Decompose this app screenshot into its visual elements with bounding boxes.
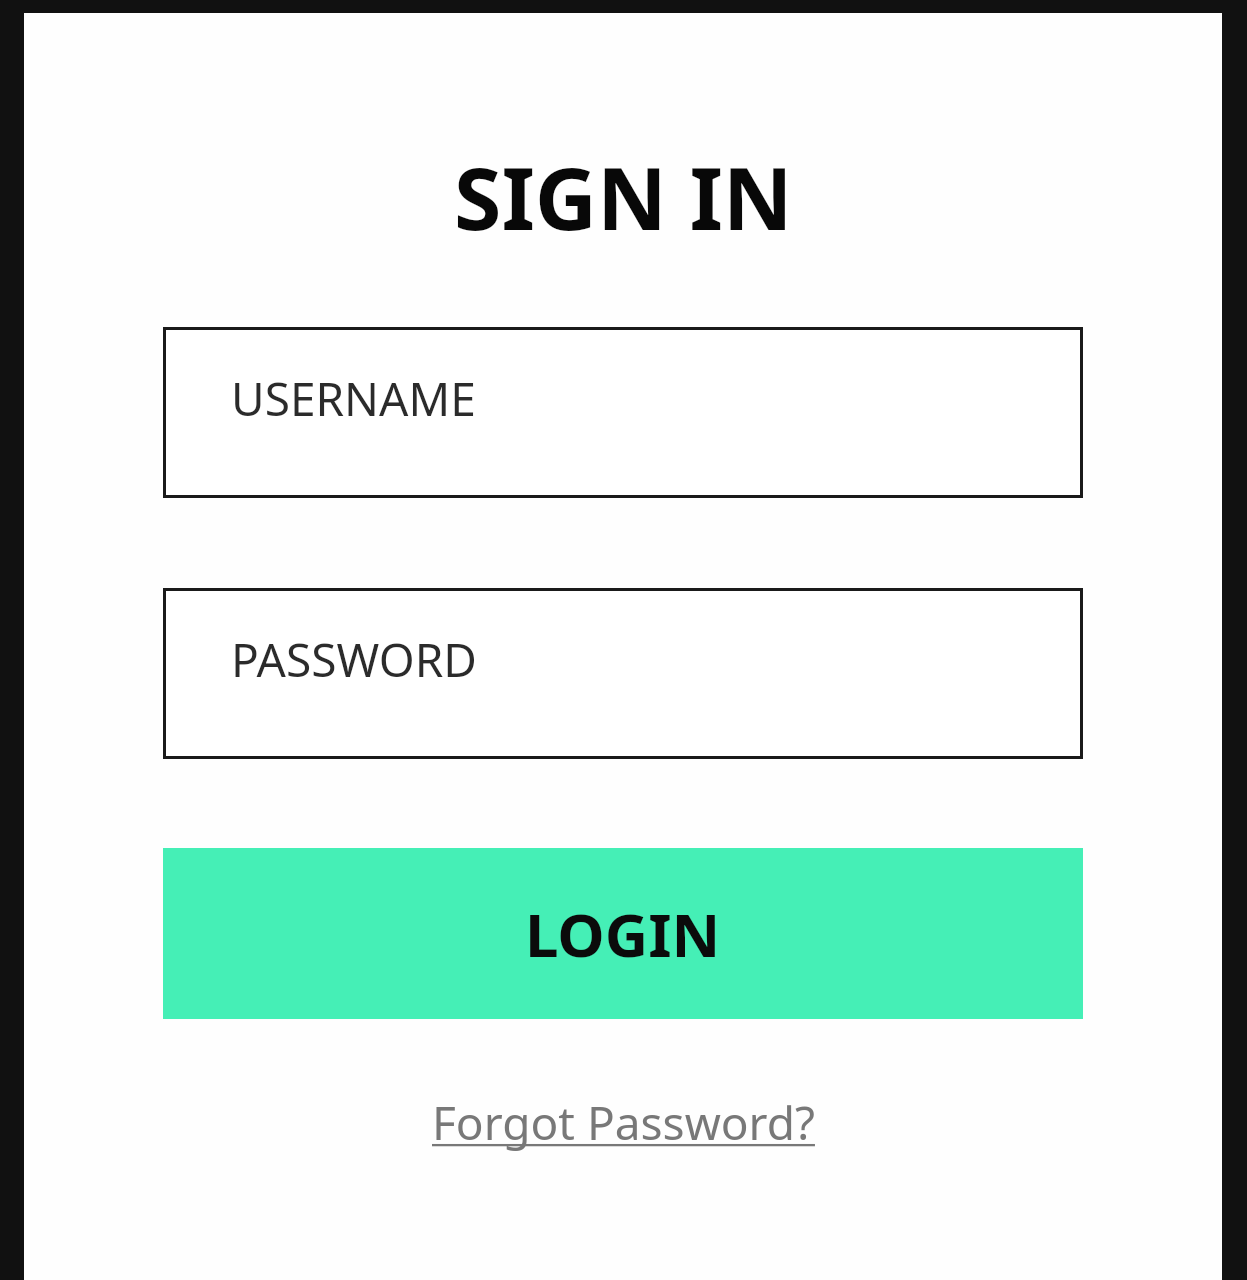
staticText: LOGIN xyxy=(525,893,721,975)
staticText: PASSWORD xyxy=(231,628,477,691)
staticText: USERNAME xyxy=(231,367,476,430)
staticText: SIGN IN xyxy=(454,138,793,255)
button[interactable]: Forgot Password? xyxy=(416,1083,831,1162)
button[interactable]: LOGIN xyxy=(163,848,1083,1019)
button[interactable]: PASSWORD xyxy=(163,588,1083,759)
staticText: Forgot Password? xyxy=(432,1091,815,1154)
button[interactable]: USERNAME xyxy=(163,327,1083,498)
